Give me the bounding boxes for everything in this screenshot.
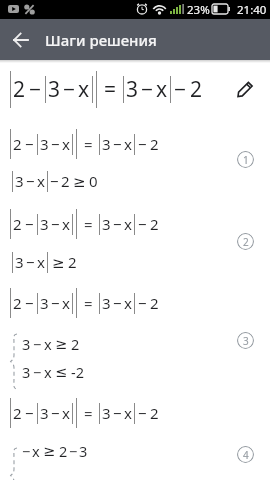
staticText: Шаги решения (45, 30, 157, 50)
staticText: − (69, 441, 78, 461)
staticText: 2 (71, 334, 80, 354)
staticText: − (138, 293, 147, 313)
button[interactable]: 2 (237, 233, 254, 250)
staticText: 2 (59, 441, 68, 461)
staticText: 2 (150, 403, 159, 423)
staticText: − (113, 293, 122, 313)
staticText: x (156, 75, 168, 104)
button[interactable]: 4 (237, 446, 254, 463)
staticText: 2 (13, 214, 22, 234)
staticText: x (78, 75, 90, 104)
staticText: x (37, 171, 45, 191)
staticText: ≥ (52, 254, 65, 271)
staticText: − (25, 214, 34, 234)
staticText: x (124, 403, 132, 423)
staticText: 3 (102, 293, 111, 313)
staticText: ≥ (73, 173, 86, 190)
staticText: − (113, 403, 122, 423)
staticText: 1 (243, 153, 249, 167)
staticText: ≥ (43, 443, 56, 460)
staticText: 4 (243, 448, 249, 462)
staticText: 2 (13, 403, 22, 423)
staticText: 2 (13, 75, 26, 104)
staticText: x (124, 134, 132, 154)
staticText: − (25, 403, 34, 423)
staticText: − (63, 75, 76, 104)
staticText: = (84, 293, 93, 313)
staticText: 3 (40, 134, 49, 154)
staticText: x (37, 252, 45, 272)
staticText: 3 (40, 214, 49, 234)
staticText: 2 (150, 214, 159, 234)
staticText: 3 (243, 334, 249, 348)
staticText: − (51, 293, 60, 313)
staticText: = (84, 214, 93, 234)
staticText: -2 (71, 362, 84, 382)
button[interactable]: 1 (237, 151, 254, 168)
staticText: − (174, 75, 187, 104)
staticText: x (32, 441, 40, 461)
staticText: − (50, 171, 59, 191)
staticText: 2 (190, 75, 203, 104)
staticText: 3 (126, 75, 139, 104)
staticText: − (138, 214, 147, 234)
staticText: 3 (48, 75, 61, 104)
staticText: 21:40 (237, 2, 267, 18)
staticText: 2 (13, 134, 22, 154)
staticText: ≥ (55, 336, 68, 353)
staticText: 2 (61, 171, 70, 191)
staticText: − (22, 441, 31, 461)
button[interactable] (4, 23, 37, 56)
staticText: x (62, 293, 70, 313)
staticText: 3 (40, 293, 49, 313)
staticText: − (29, 75, 42, 104)
button[interactable]: 3 (237, 332, 254, 349)
staticText: x (124, 214, 132, 234)
staticText: 2 (243, 235, 249, 249)
staticText: − (26, 252, 35, 272)
staticText: = (84, 134, 93, 154)
staticText: ≤ (55, 364, 68, 381)
staticText: − (51, 214, 60, 234)
staticText: 2 (150, 134, 159, 154)
staticText: − (51, 134, 60, 154)
staticText: − (113, 214, 122, 234)
staticText: = (104, 75, 117, 104)
staticText: 3 (22, 362, 31, 382)
staticText: 3 (102, 134, 111, 154)
staticText: 3 (79, 441, 88, 461)
staticText: 3 (15, 171, 24, 191)
staticText: − (138, 403, 147, 423)
staticText: x (44, 334, 52, 354)
staticText: = (84, 403, 93, 423)
staticText: x (44, 362, 52, 382)
staticText: 3 (22, 334, 31, 354)
staticText: − (51, 403, 60, 423)
button[interactable] (236, 79, 256, 99)
staticText: − (25, 293, 34, 313)
staticText: − (26, 171, 35, 191)
staticText: 2 (150, 293, 159, 313)
staticText: 3 (102, 214, 111, 234)
staticText: 0 (89, 171, 98, 191)
staticText: x (62, 134, 70, 154)
staticText: 3 (102, 403, 111, 423)
staticText: − (25, 134, 34, 154)
staticText: 2 (13, 293, 22, 313)
staticText: x (124, 293, 132, 313)
staticText: − (113, 134, 122, 154)
staticText: 3 (40, 403, 49, 423)
staticText: − (141, 75, 154, 104)
staticText: x (62, 403, 70, 423)
staticText: − (33, 362, 42, 382)
staticText: 2 (68, 252, 77, 272)
staticText: 3 (15, 252, 24, 272)
staticText: 23% (187, 2, 210, 18)
staticText: − (33, 334, 42, 354)
staticText: − (138, 134, 147, 154)
staticText: x (62, 214, 70, 234)
